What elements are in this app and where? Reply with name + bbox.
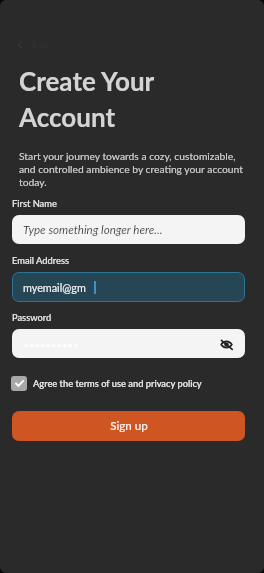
- button[interactable]: Show password: [216, 334, 236, 354]
- button[interactable]: Show password: [12, 329, 245, 358]
- staticText: Sign up: [110, 419, 148, 433]
- staticText: Email Address: [12, 255, 70, 266]
- staticText: Start your journey towards a cozy, custo…: [19, 149, 248, 188]
- button[interactable]: Type something longer here...: [12, 215, 245, 244]
- staticText: Create Your Account: [19, 62, 155, 134]
- staticText: Type something longer here...: [23, 223, 163, 237]
- button[interactable]: Sign up: [12, 411, 245, 441]
- staticText: myemail@gm: [23, 281, 86, 294]
- button[interactable]: myemail@gm: [12, 272, 245, 302]
- staticText: First Name: [12, 198, 57, 209]
- button[interactable]: Agree the terms of use and privacy polic…: [11, 376, 202, 391]
- staticText: Password: [12, 312, 52, 323]
- staticText: Agree the terms of use and privacy polic…: [33, 378, 202, 389]
